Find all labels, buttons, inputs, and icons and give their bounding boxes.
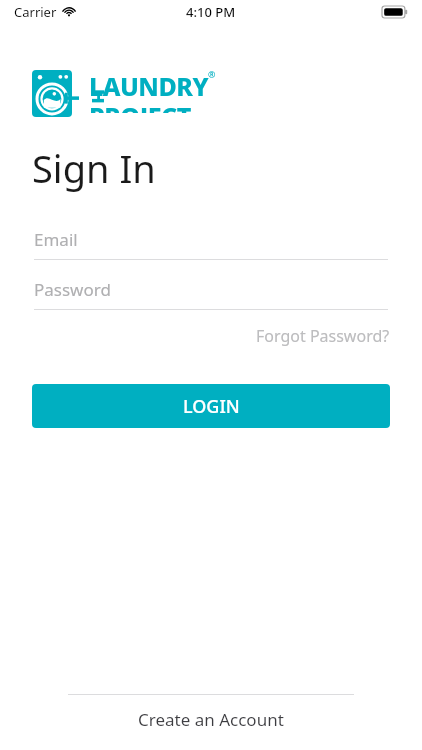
- staticText: Carrier: [14, 3, 57, 21]
- button[interactable]: Forgot Password?: [230, 320, 390, 352]
- button[interactable]: Email: [34, 228, 388, 260]
- staticText: Email: [34, 228, 78, 251]
- staticText: Create an Account: [138, 708, 284, 731]
- staticText: ®: [208, 68, 216, 80]
- staticText: 4:10 PM: [186, 3, 236, 21]
- staticText: Sign In: [32, 142, 156, 194]
- staticText: THE: [58, 86, 104, 104]
- staticText: PROJECT: [89, 99, 191, 113]
- button[interactable]: Password: [34, 278, 388, 310]
- button[interactable]: Create an Account: [0, 695, 422, 743]
- button[interactable]: LOGIN: [32, 384, 390, 428]
- staticText: Password: [34, 278, 111, 301]
- staticText: LAUNDRY: [89, 69, 208, 103]
- staticText: Forgot Password?: [256, 325, 390, 347]
- staticText: LOGIN: [183, 394, 240, 419]
